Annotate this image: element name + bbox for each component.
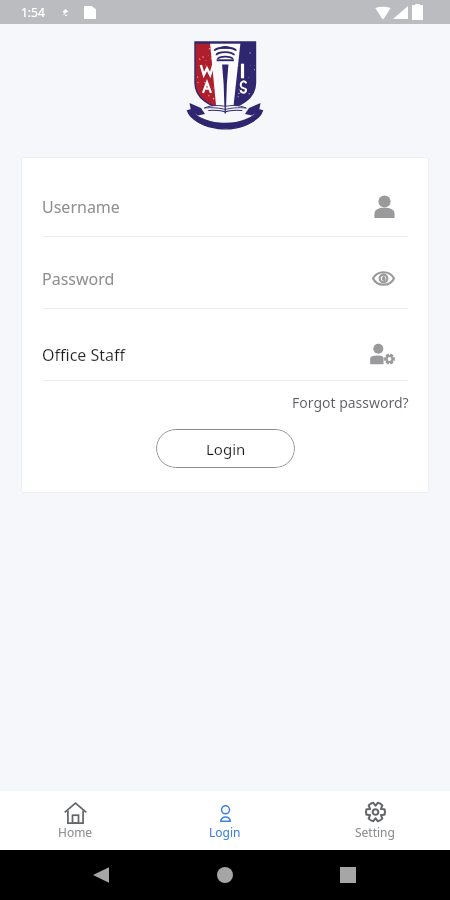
other: Username [374, 196, 395, 218]
staticText: 1:54 [21, 4, 45, 20]
button[interactable]: Recent apps [324, 856, 372, 893]
other: Select user type [370, 344, 395, 365]
button[interactable]: Home [0, 791, 150, 850]
button[interactable]: Back [77, 856, 125, 893]
staticText: Home [58, 824, 93, 840]
button[interactable]: Password [21, 237, 429, 308]
button[interactable]: Home [201, 856, 249, 893]
staticText: Setting [355, 824, 395, 840]
button[interactable]: Forgot password? [292, 393, 429, 412]
staticText: Login [206, 439, 246, 459]
button[interactable]: Office Staff [21, 309, 429, 380]
other: Show password [372, 270, 395, 287]
staticText: Login [209, 824, 241, 840]
button[interactable]: Login [150, 791, 300, 850]
button[interactable]: Login [156, 429, 295, 468]
staticText: Password [42, 268, 115, 290]
button[interactable]: Username [21, 165, 429, 236]
staticText: Username [42, 196, 120, 218]
button[interactable]: Setting [300, 791, 450, 850]
staticText: Office Staff [42, 344, 126, 366]
